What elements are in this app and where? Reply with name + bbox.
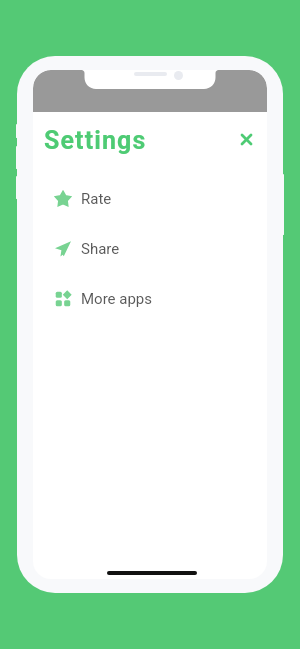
button[interactable]: Close [233,126,259,152]
staticText: Rate [81,190,112,208]
button[interactable]: More apps [33,274,267,324]
button[interactable]: Share [33,224,267,274]
staticText: More apps [81,290,153,308]
staticText: Settings [44,126,147,155]
button[interactable]: Rate [33,174,267,224]
staticText: Share [81,240,120,258]
